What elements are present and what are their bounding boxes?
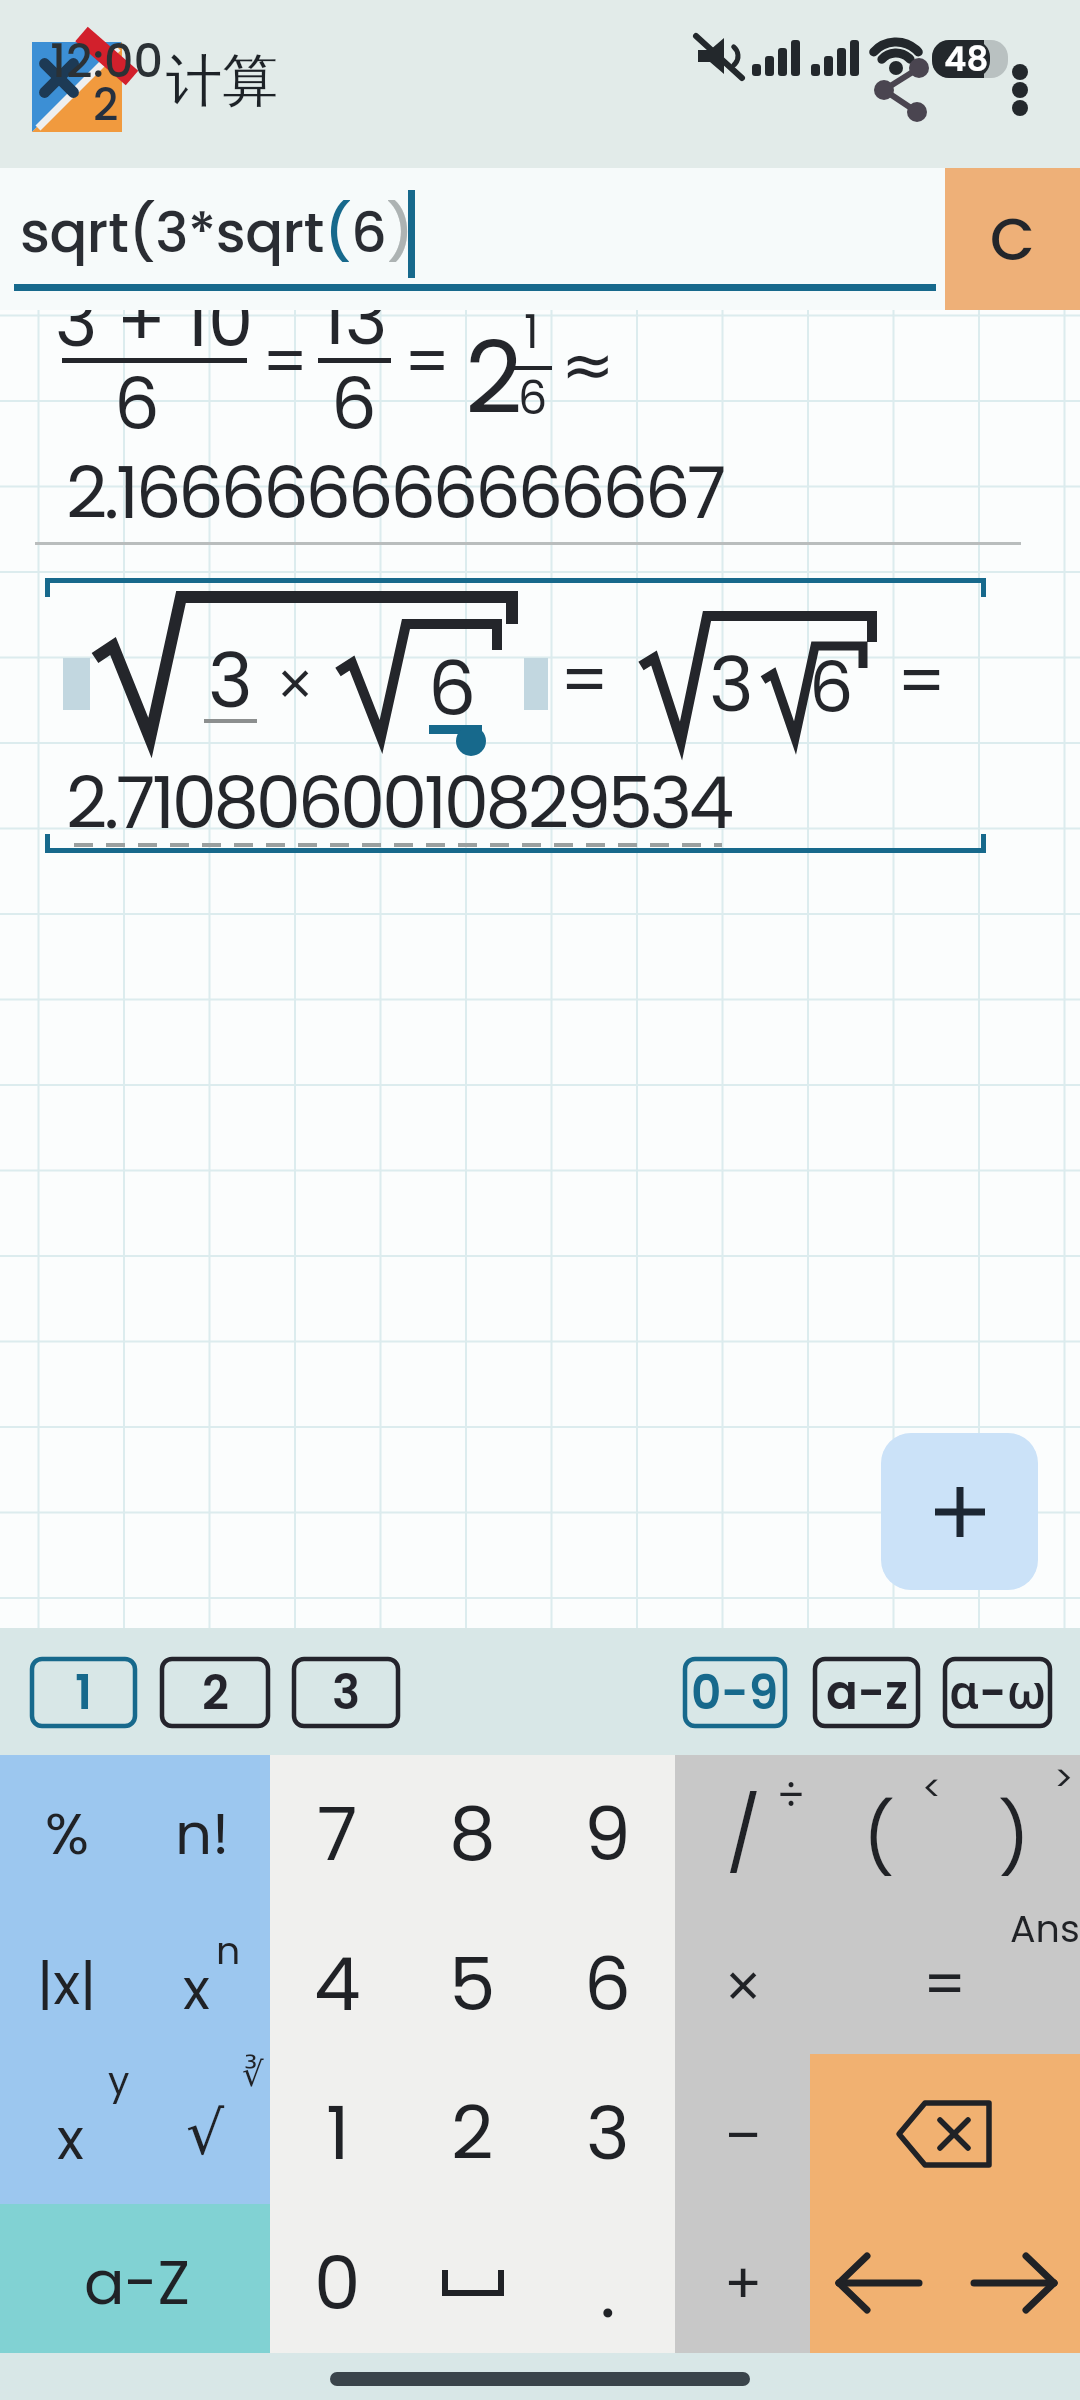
staticText: 3	[709, 631, 754, 737]
staticText: 9	[584, 1782, 631, 1886]
staticText: y	[108, 2054, 130, 2107]
button[interactable]: 9	[540, 1759, 675, 1908]
button[interactable]: 3	[292, 1657, 400, 1728]
button[interactable]	[811, 2208, 946, 2357]
button[interactable]: 2	[405, 2058, 540, 2207]
staticText: √	[186, 2098, 225, 2168]
staticText: )	[998, 1789, 1030, 1887]
staticText: 1	[326, 2081, 350, 2185]
staticText: 1	[75, 1660, 93, 1726]
button[interactable]: .	[540, 2216, 675, 2365]
staticText: 2	[465, 310, 523, 448]
button[interactable]: =	[810, 1909, 1080, 2058]
staticText: a-Z	[84, 2241, 191, 2325]
button[interactable]: 1	[270, 2058, 405, 2207]
staticText: 13	[322, 310, 388, 369]
button[interactable]	[810, 2059, 1080, 2208]
staticText: sqrt(3*sqrt(6)	[20, 193, 414, 271]
staticText: 6	[114, 353, 160, 454]
staticText: 2	[451, 2081, 494, 2185]
button[interactable]	[405, 2208, 540, 2357]
staticText: 5	[449, 1932, 496, 2036]
staticText: 6	[584, 1932, 631, 2036]
staticText: <	[922, 1763, 942, 1813]
staticText: ×	[726, 1943, 761, 2025]
staticText: 6	[518, 366, 548, 430]
button[interactable]: ×	[676, 1909, 811, 2058]
button[interactable]: a-Z	[2, 2208, 272, 2357]
staticText: C	[990, 199, 1035, 280]
button[interactable]: α-ω	[943, 1657, 1052, 1728]
staticText: 3	[208, 627, 253, 733]
button[interactable]: 0	[270, 2208, 405, 2357]
button[interactable]	[881, 1433, 1038, 1590]
staticText: −	[726, 2092, 761, 2174]
staticText: 8	[449, 1782, 496, 1886]
button[interactable]: %	[0, 1759, 135, 1908]
staticText: a-z	[826, 1660, 908, 1726]
button[interactable]: 6	[540, 1909, 675, 2058]
staticText: 0	[314, 2231, 361, 2335]
staticText: >	[1054, 1753, 1074, 1803]
staticText: 6	[331, 353, 377, 454]
staticText: ∛	[242, 2054, 264, 2094]
button[interactable]: n!	[135, 1759, 270, 1908]
staticText: 12:00	[50, 29, 163, 93]
staticText: x	[183, 1950, 210, 2028]
staticText: 3	[332, 1660, 361, 1726]
button[interactable]: C	[945, 168, 1080, 310]
staticText: n	[216, 1924, 241, 1977]
staticText: 3	[586, 2081, 630, 2185]
button[interactable]: )	[946, 1763, 1080, 1912]
staticText: 7	[317, 1782, 358, 1886]
staticText: 2.7108060010829534	[66, 752, 731, 853]
staticText: 6	[809, 638, 854, 736]
staticText: %	[45, 1793, 90, 1874]
staticText: /	[726, 1782, 762, 1886]
staticText: =	[404, 317, 451, 407]
staticText: Ans	[1010, 1902, 1080, 1955]
button[interactable]: /	[676, 1759, 811, 1908]
staticText: ÷	[777, 1766, 805, 1825]
staticText: |x|	[37, 1945, 97, 2023]
staticText: 3 + 10	[55, 310, 254, 371]
staticText: 4	[314, 1932, 361, 2036]
button[interactable]: √	[138, 2058, 273, 2207]
staticText: =	[262, 317, 309, 407]
button[interactable]: 7	[270, 1759, 405, 1908]
button[interactable]: 0-9	[683, 1657, 787, 1728]
button[interactable]: x	[129, 1914, 264, 2063]
staticText: 0-9	[691, 1660, 779, 1726]
staticText: 2	[202, 1660, 229, 1726]
button[interactable]: 3	[540, 2058, 675, 2207]
staticText: ×	[278, 641, 313, 723]
button[interactable]: +	[676, 2208, 811, 2357]
staticText: =	[923, 1942, 967, 2026]
staticText: 计算	[166, 46, 278, 117]
staticText: 2.166666666666667	[66, 442, 724, 543]
staticText: 1	[524, 310, 539, 364]
button[interactable]: 5	[405, 1909, 540, 2058]
staticText: 2	[93, 74, 119, 136]
button[interactable]: 1	[30, 1657, 137, 1728]
staticText: 48	[944, 35, 989, 83]
staticText: x	[57, 2100, 84, 2178]
button[interactable]: 4	[270, 1909, 405, 2058]
staticText: ≈	[561, 328, 615, 403]
button[interactable]: (	[811, 1763, 946, 1912]
button[interactable]: a-z	[813, 1657, 920, 1728]
staticText: n!	[175, 1793, 230, 1874]
staticText: +	[724, 2244, 763, 2322]
staticText: =	[897, 634, 947, 729]
staticText: 6	[428, 635, 477, 741]
button[interactable]	[946, 2208, 1080, 2357]
staticText: =	[560, 633, 610, 728]
staticText: (	[863, 1789, 895, 1887]
button[interactable]: −	[676, 2058, 811, 2207]
button[interactable]: x	[3, 2064, 138, 2213]
button[interactable]: 8	[405, 1759, 540, 1908]
staticText: α-ω	[949, 1659, 1047, 1726]
staticText: .	[600, 2239, 616, 2343]
button[interactable]: 2	[160, 1657, 270, 1728]
button[interactable]: |x|	[0, 1909, 134, 2058]
